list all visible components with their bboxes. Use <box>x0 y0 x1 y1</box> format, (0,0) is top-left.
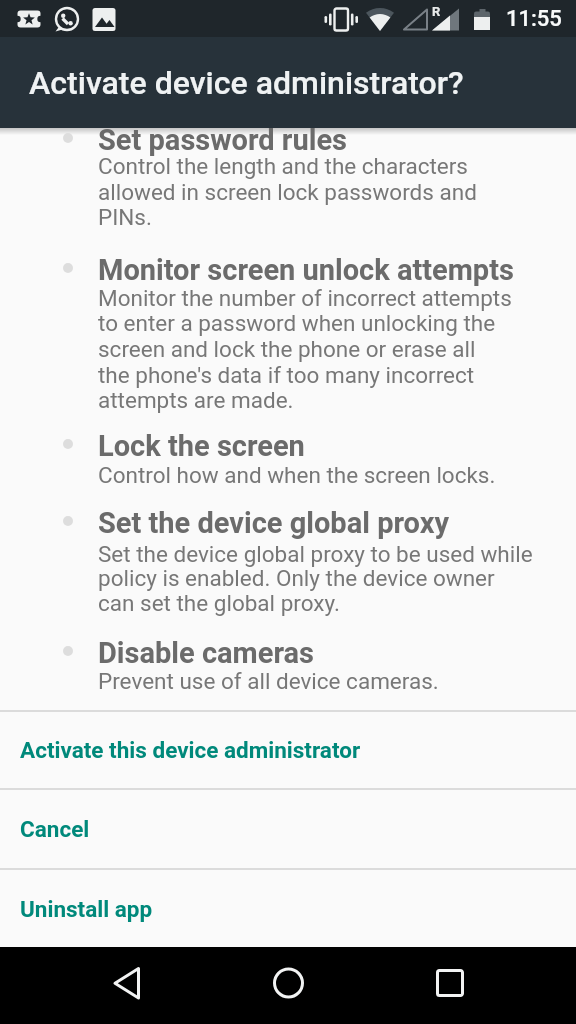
button[interactable]: Cancel <box>0 790 576 868</box>
button[interactable] <box>402 947 498 1024</box>
staticText: Uninstall app <box>20 896 153 922</box>
staticText: Set the device global proxy to be used w… <box>98 541 533 567</box>
staticText: PINs. <box>98 204 152 230</box>
staticText: allowed in screen lock passwords and <box>98 179 477 205</box>
staticText: can set the global proxy. <box>98 590 340 616</box>
staticText: Cancel <box>20 816 90 842</box>
staticText: Activate this device administrator <box>20 737 361 763</box>
button[interactable]: Uninstall app <box>0 870 576 947</box>
staticText: Control how and when the screen locks. <box>98 462 496 488</box>
staticText: Control the length and the characters <box>98 153 468 179</box>
staticText: to enter a password when unlocking the <box>98 310 496 336</box>
staticText: attempts are made. <box>98 387 294 413</box>
staticText: Prevent use of all device cameras. <box>98 668 439 694</box>
staticText: Set password rules <box>98 123 347 157</box>
staticText: Disable cameras <box>98 636 315 670</box>
button[interactable]: Activate this device administrator <box>0 712 576 788</box>
button[interactable] <box>79 947 175 1024</box>
staticText: screen and lock the phone or erase all <box>98 336 476 362</box>
button[interactable] <box>240 947 336 1024</box>
staticText: Activate device administrator? <box>29 64 464 102</box>
staticText: the phone's data if too many incorrect <box>98 362 475 388</box>
staticText: Monitor the number of incorrect attempts <box>98 285 512 311</box>
staticText: Monitor screen unlock attempts <box>98 253 514 287</box>
staticText: Set the device global proxy <box>98 506 449 540</box>
staticText: R <box>432 4 441 19</box>
staticText: Lock the screen <box>98 429 305 463</box>
staticText: policy is enabled. Only the device owner <box>98 565 495 591</box>
staticText: 11:55 <box>506 6 562 32</box>
